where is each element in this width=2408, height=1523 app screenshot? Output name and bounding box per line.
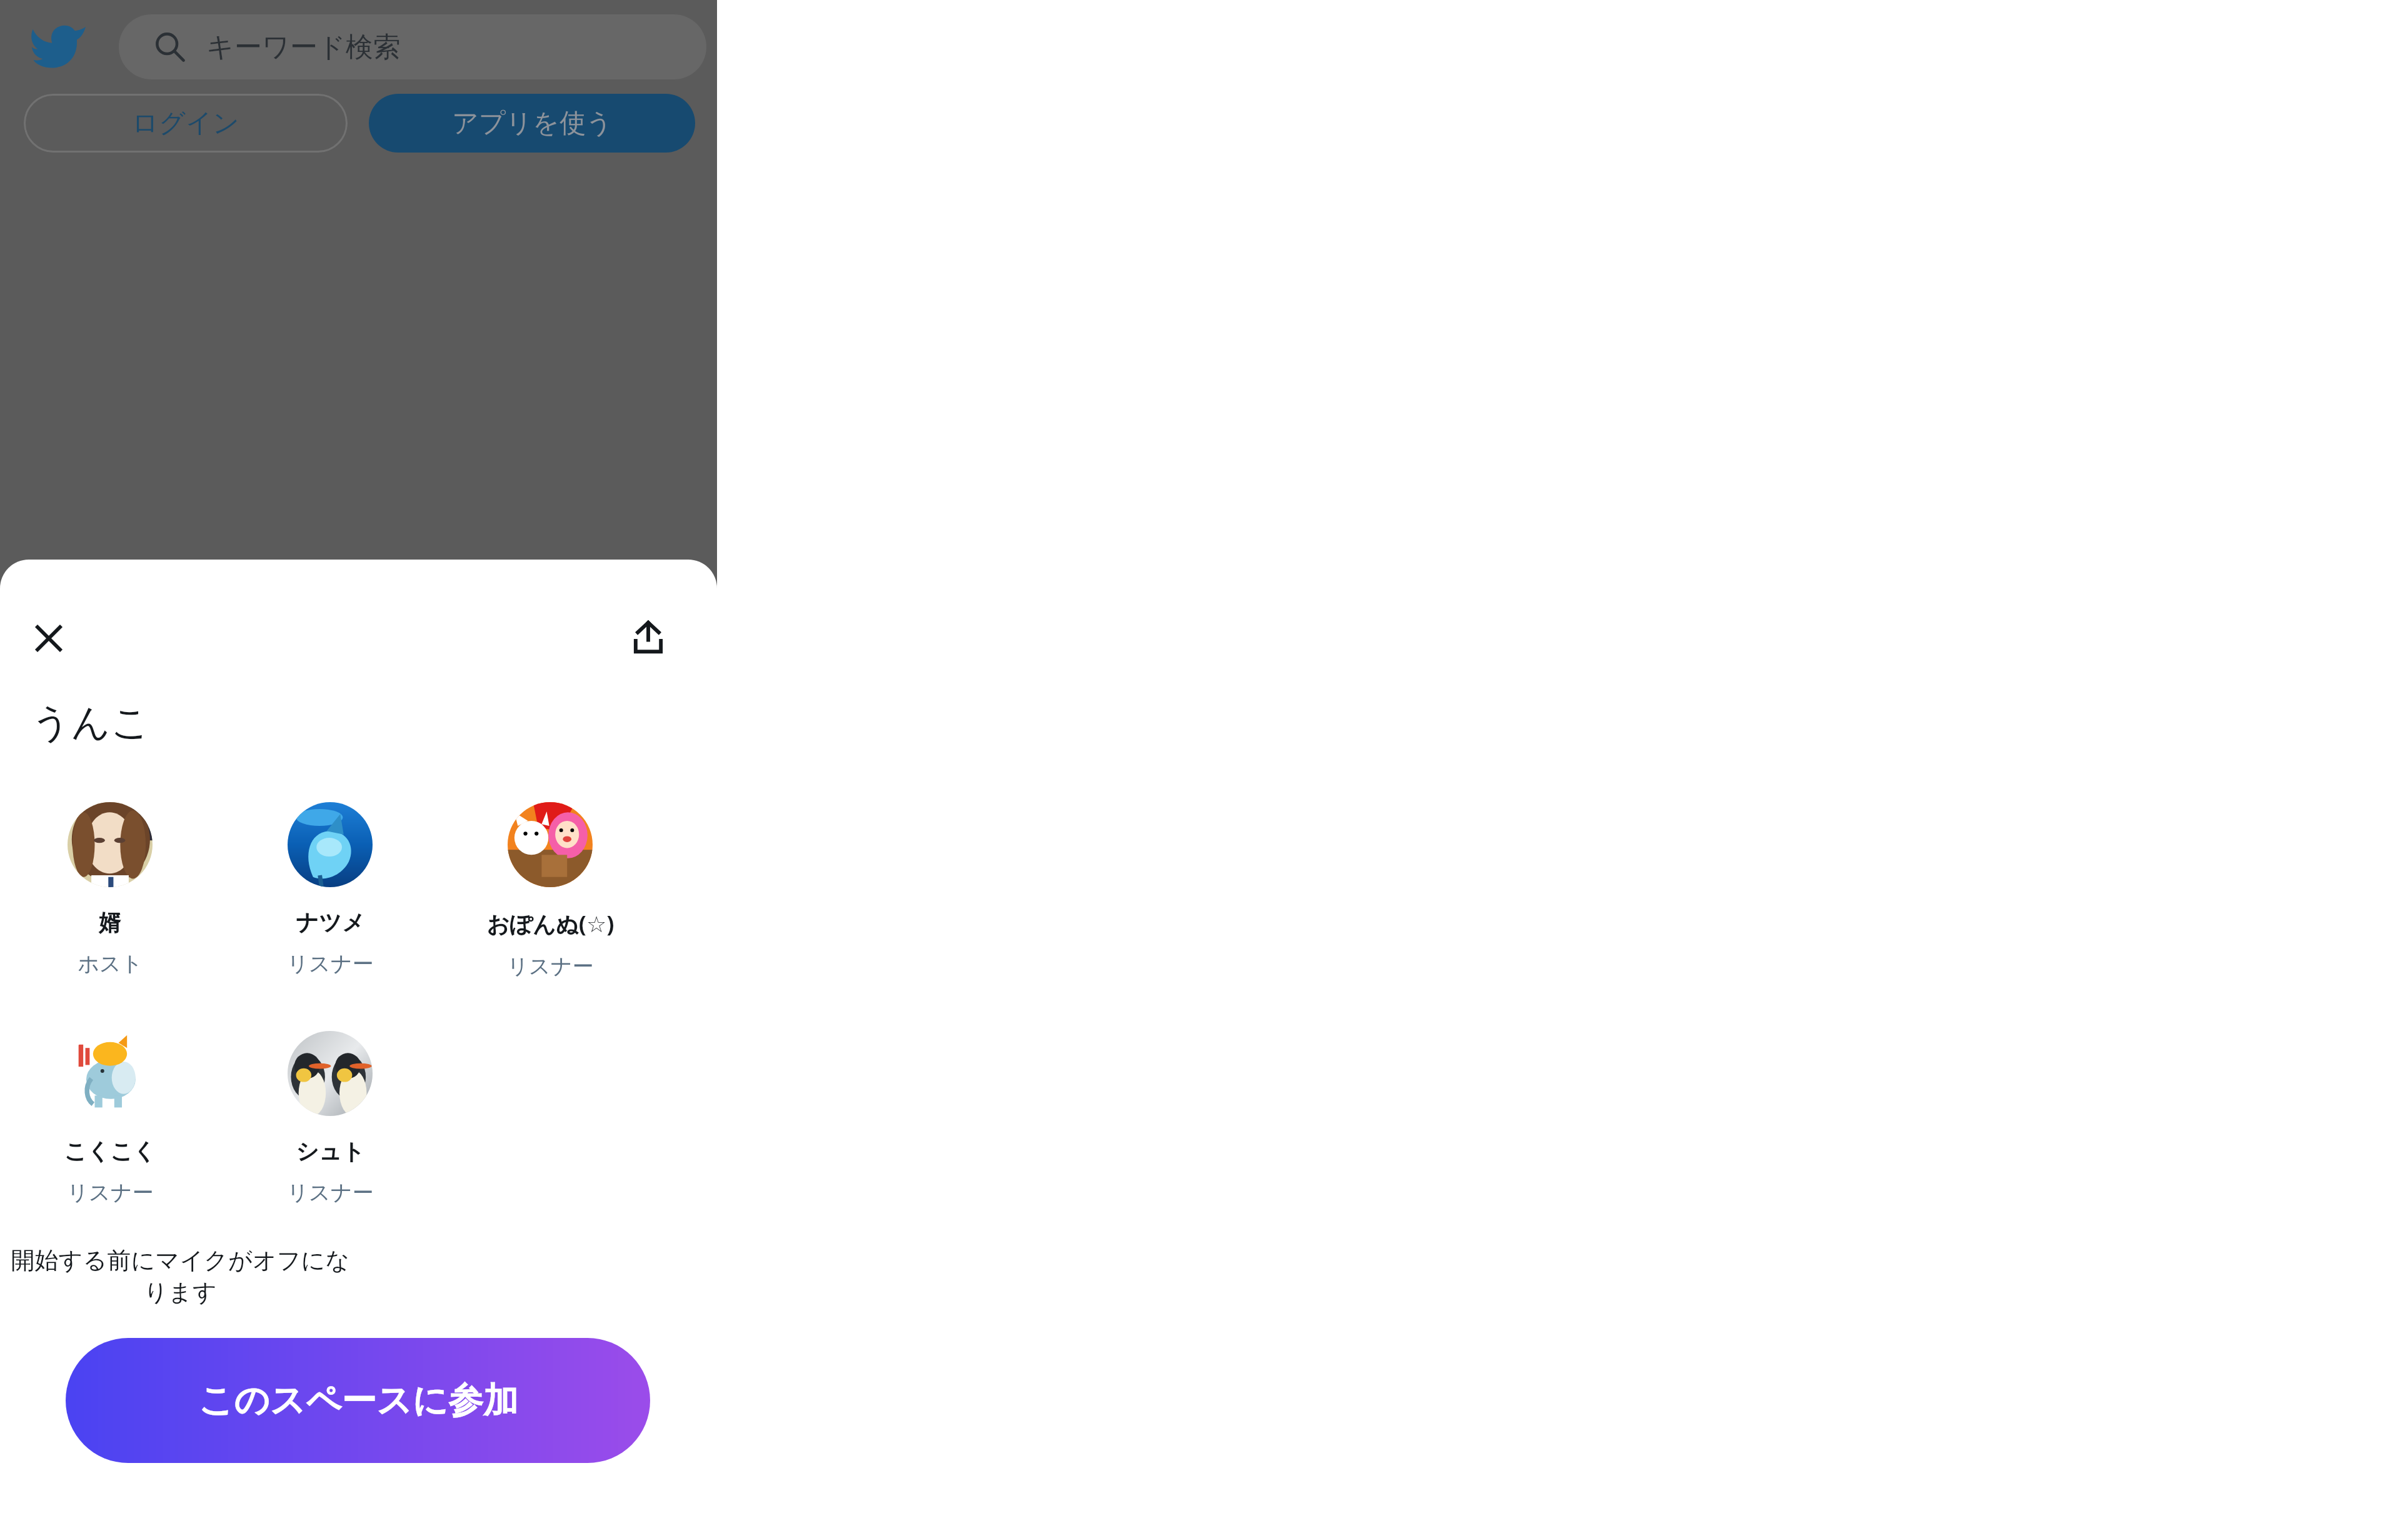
staticText: おぽんぬ(☆) (486, 908, 615, 939)
staticText: ホスト (78, 950, 143, 977)
staticText: 婿 (99, 908, 121, 937)
staticText: うんこ (31, 698, 151, 747)
staticText: ログイン (132, 107, 239, 140)
staticText: このスペースに参加 (198, 1379, 518, 1423)
button[interactable]: ナツメ (220, 802, 440, 977)
staticText: ナツメ (296, 908, 365, 937)
button[interactable]: アプリを使う (369, 94, 695, 153)
staticText: リスナー (287, 950, 374, 977)
staticText: こくこく (64, 1137, 156, 1165)
staticText: リスナー (67, 1179, 154, 1206)
staticText: キーワード検索 (206, 30, 401, 64)
button[interactable]: こくこく (0, 1031, 220, 1206)
button[interactable]: シュト (220, 1031, 440, 1206)
button[interactable]: おぽんぬ(☆) (440, 802, 660, 980)
button[interactable]: Close (16, 606, 81, 671)
staticText: アプリを使う (452, 107, 613, 140)
button[interactable]: ログイン (24, 94, 348, 153)
button[interactable]: このスペースに参加 (66, 1338, 650, 1463)
button[interactable]: Share (616, 606, 681, 671)
staticText: リスナー (287, 1179, 374, 1206)
staticText: リスナー (507, 953, 594, 980)
button[interactable]: Twitter home (25, 14, 91, 80)
button[interactable]: キーワード検索 (119, 14, 706, 79)
staticText: シュト (296, 1137, 365, 1165)
button[interactable]: 婿 (0, 802, 220, 977)
staticText: 開始する前にマイクがオフになります (0, 1245, 361, 1308)
